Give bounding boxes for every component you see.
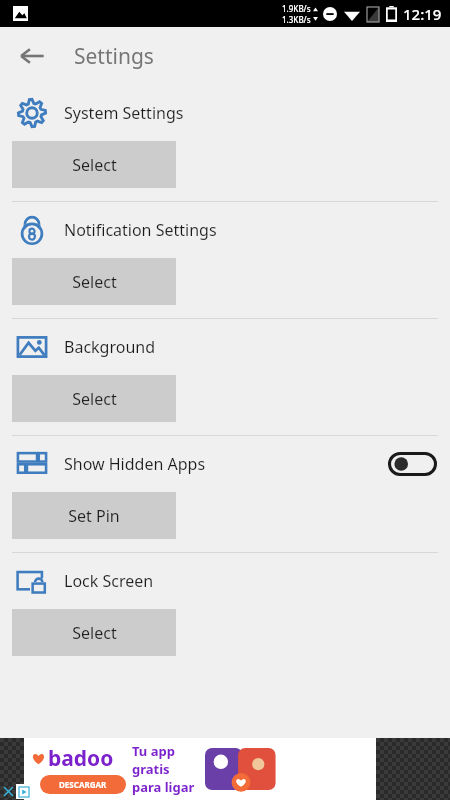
button[interactable]: Ad info	[16, 784, 31, 799]
staticText: Lock Screen	[64, 570, 450, 592]
staticText: 12:19	[403, 4, 442, 24]
staticText: 1.9KB/s	[282, 3, 311, 14]
staticText: para ligar	[132, 778, 195, 796]
button[interactable]: Select	[12, 258, 176, 305]
staticText: Select	[72, 154, 117, 176]
button[interactable]: Back	[8, 32, 56, 80]
staticText: gratis	[132, 760, 170, 778]
button[interactable]: Lock Screen	[0, 553, 450, 609]
staticText: badoo	[48, 744, 114, 773]
staticText: System Settings	[64, 102, 450, 124]
button[interactable]: Background	[0, 319, 450, 375]
button[interactable]: Show Hidden Apps toggle	[388, 452, 437, 476]
button[interactable]: Select	[12, 375, 176, 422]
button[interactable]: Select	[12, 141, 176, 188]
staticText: Settings	[74, 42, 154, 71]
button[interactable]: Set Pin	[12, 492, 176, 539]
button[interactable]: System Settings	[0, 85, 450, 141]
staticText: Notification Settings	[64, 219, 450, 241]
button[interactable]: Notification Settings	[0, 202, 450, 258]
staticText: Select	[72, 388, 117, 410]
staticText: Set Pin	[68, 505, 120, 527]
button[interactable]: Select	[12, 609, 176, 656]
staticText: Background	[64, 336, 450, 358]
button[interactable]: Advertisement	[24, 738, 376, 800]
staticText: Select	[72, 271, 117, 293]
staticText: Select	[72, 622, 117, 644]
staticText: Tu app	[132, 742, 175, 760]
staticText: Show Hidden Apps	[64, 453, 388, 475]
staticText: DESCARGAR	[59, 779, 107, 790]
button[interactable]: Close ad	[1, 784, 16, 799]
staticText: 1.3KB/s	[282, 14, 311, 25]
button[interactable]: Show Hidden Apps	[0, 436, 450, 492]
